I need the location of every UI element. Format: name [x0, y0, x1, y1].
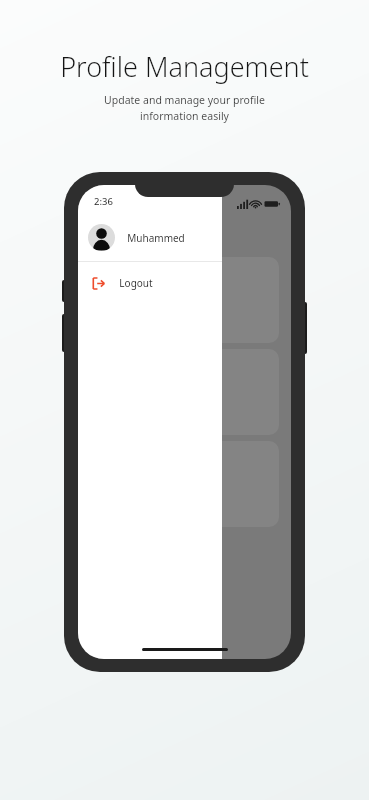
- staticText: 2024: [90, 235, 111, 247]
- staticText: information easily: [140, 109, 229, 123]
- staticText: Update and manage your profile: [104, 93, 265, 107]
- staticText: Profile Management: [60, 48, 309, 85]
- staticText: Muhammed: [127, 231, 185, 245]
- button[interactable]: Logout: [78, 262, 222, 304]
- button[interactable]: Accepted: [90, 257, 279, 343]
- button[interactable]: Canceled: [90, 441, 279, 527]
- staticText: 2:36: [94, 195, 113, 208]
- button[interactable]: Delivered: [90, 349, 279, 435]
- staticText: Logout: [119, 276, 153, 290]
- other: Logout: [92, 277, 105, 290]
- button[interactable]: Muhammed: [78, 220, 222, 261]
